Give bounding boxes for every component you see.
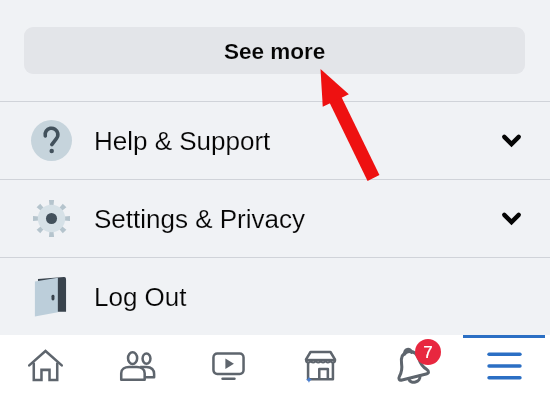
button[interactable]: Log Out bbox=[0, 258, 550, 335]
button[interactable]: Settings & Privacy bbox=[0, 180, 550, 257]
button[interactable]: Help & Support bbox=[0, 102, 550, 179]
staticText: Log Out bbox=[94, 282, 187, 311]
staticText: Settings & Privacy bbox=[94, 204, 305, 233]
staticText: See more bbox=[224, 39, 326, 64]
button[interactable]: Home bbox=[0, 335, 91, 398]
button[interactable]: Notifications bbox=[366, 335, 458, 398]
button[interactable]: Friends bbox=[91, 335, 182, 398]
staticText: Help & Support bbox=[94, 126, 271, 155]
staticText: 7 bbox=[423, 343, 433, 362]
button[interactable]: See more bbox=[24, 27, 525, 74]
button[interactable]: Menu bbox=[458, 335, 550, 398]
button[interactable]: Video bbox=[182, 335, 274, 398]
button[interactable]: Marketplace bbox=[274, 335, 366, 398]
